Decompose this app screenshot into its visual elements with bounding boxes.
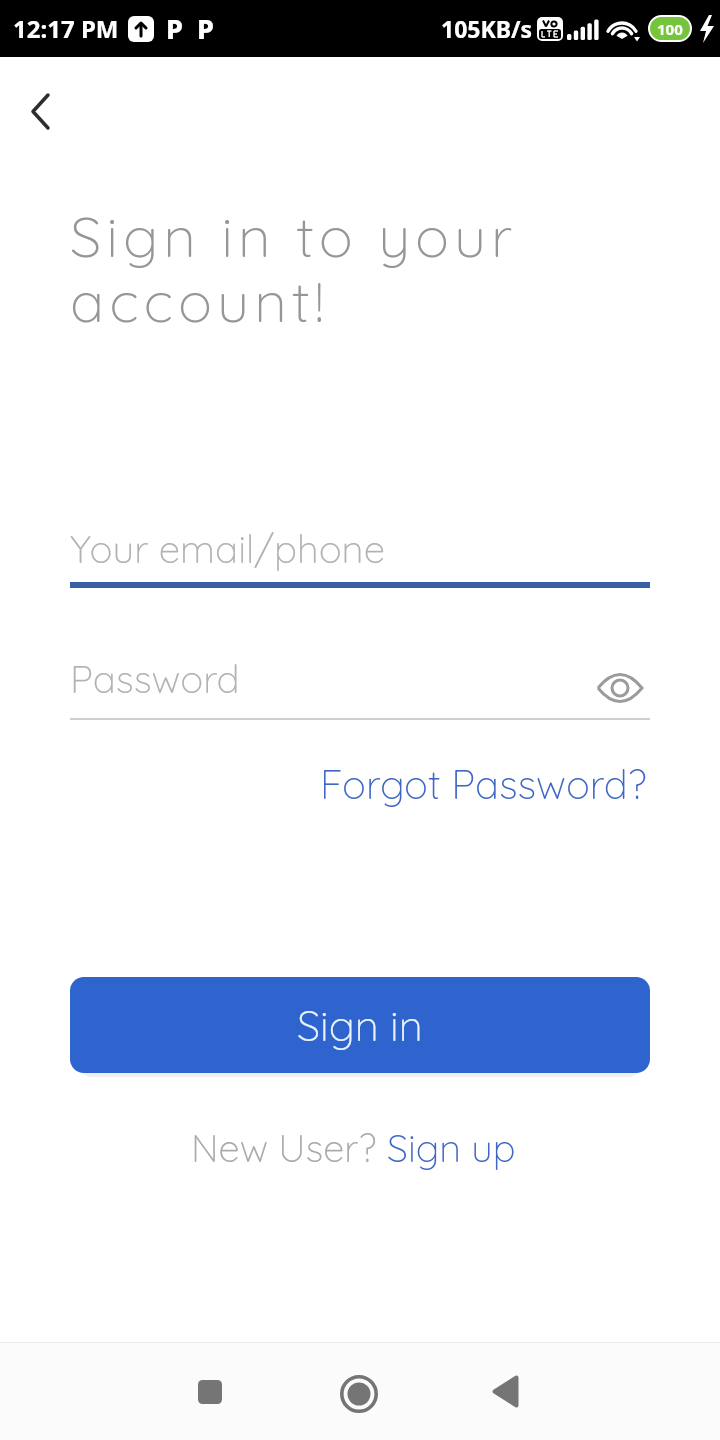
staticText: New User? (191, 1124, 387, 1172)
button[interactable]: Sign up (387, 1124, 516, 1172)
button[interactable] (492, 1375, 519, 1408)
staticText: 100 (657, 19, 683, 39)
staticText: 12:17 PM (13, 12, 119, 45)
staticText: P (166, 10, 183, 47)
staticText: Your email/phone (70, 524, 386, 572)
staticText: Sign in (297, 999, 423, 1052)
staticText: P (197, 10, 214, 47)
button[interactable] (596, 672, 644, 704)
button[interactable] (28, 90, 54, 134)
button[interactable] (198, 1380, 222, 1404)
staticText: Password (70, 654, 240, 702)
staticText: Sign in to your account! (70, 200, 518, 336)
button[interactable]: Forgot Password? (320, 759, 647, 809)
button[interactable]: Sign in (70, 977, 650, 1073)
staticText: 105KB/s (441, 13, 533, 44)
button[interactable] (340, 1375, 378, 1413)
